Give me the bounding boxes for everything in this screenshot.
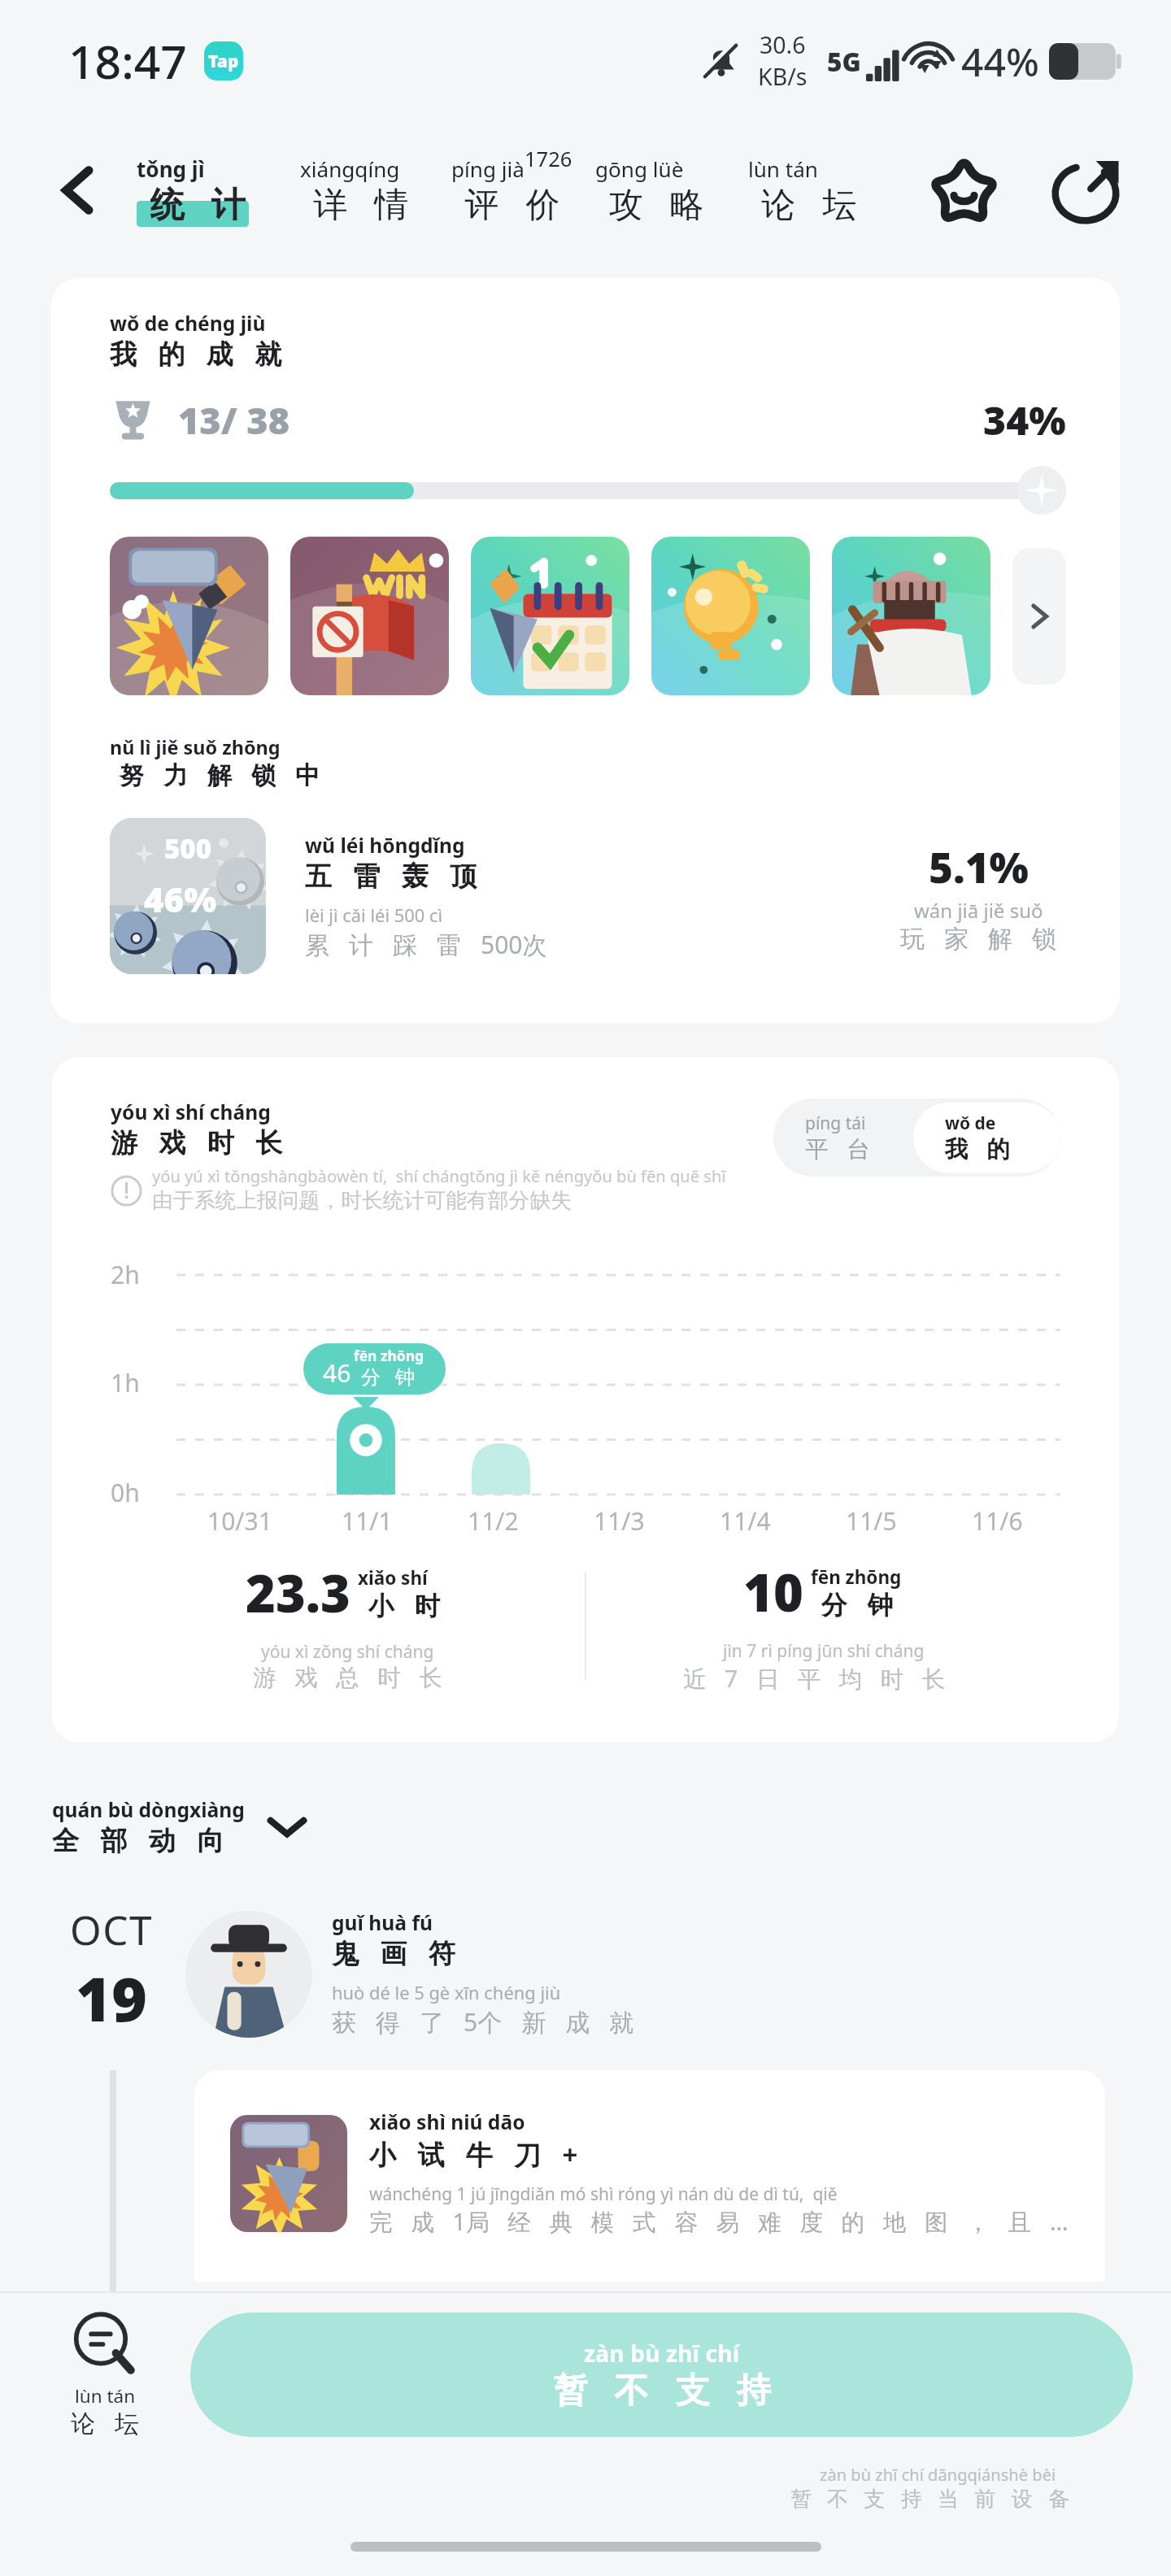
staticText: xiǎo shì niú dāo <box>369 2108 525 2136</box>
staticText: yóu yú xì tǒngshàngbàowèn tí, shí chángt… <box>152 1165 726 1187</box>
staticText: yóu xì zǒng shí cháng <box>261 1640 434 1664</box>
staticText: nǔ lì jiě suǒ zhōng <box>110 734 281 760</box>
staticText: 44% <box>961 35 1039 88</box>
staticText: zàn bù zhī chí <box>584 2338 740 2369</box>
staticText: wǒ de chéng jiù <box>110 310 266 337</box>
staticText: 累计踩雷500次 <box>305 928 567 961</box>
staticText: wán jiā jiě suǒ <box>914 897 1043 924</box>
staticText: xiángqíng <box>300 154 400 184</box>
button[interactable]: lùn tán <box>24 2310 185 2439</box>
staticText: jìn 7 rì píng jūn shí cháng <box>723 1639 925 1663</box>
staticText: huò dé le 5 gè xīn chéng jiù <box>332 1981 561 2005</box>
staticText: fēn zhōng <box>811 1564 902 1590</box>
staticText: 11/5 <box>846 1504 897 1538</box>
staticText: 论坛 <box>61 2408 149 2439</box>
staticText: 我的 <box>945 1135 1029 1164</box>
staticText: 34% <box>983 394 1066 446</box>
staticText: 小试牛刀+ <box>369 2136 578 2173</box>
staticText: 10 <box>743 1557 803 1627</box>
staticText: 由于系统上报问题，时长统计可能有部分缺失 <box>152 1187 572 1214</box>
button[interactable]: 500 <box>110 818 1066 974</box>
button[interactable]: wǒ de <box>913 1103 1060 1173</box>
button[interactable]: tǒng jì <box>137 145 259 237</box>
staticText: 暂不支持当前设备 <box>790 2486 1086 2513</box>
staticText: 13/ 38 <box>178 395 290 445</box>
staticText: 11/3 <box>594 1504 645 1538</box>
staticText: KB/s <box>758 61 808 93</box>
staticText: 攻略 <box>595 184 717 227</box>
staticText: 11/2 <box>468 1504 519 1538</box>
staticText: lùn tán <box>75 2383 136 2408</box>
staticText: píng jià <box>451 154 525 184</box>
staticText: 完成1局经典模式容易难度的地图，且… <box>369 2206 1069 2238</box>
staticText: 平台 <box>805 1135 889 1164</box>
staticText: lèi jì cǎi léi 500 cì <box>305 903 443 928</box>
staticText: 暂不支持 <box>540 2369 784 2413</box>
staticText: 评价 <box>451 184 573 227</box>
staticText: 11/1 <box>342 1504 393 1538</box>
staticText: OCT <box>70 1902 153 1956</box>
button[interactable]: Achievement badge <box>651 537 810 695</box>
staticText: Tap <box>208 50 239 73</box>
staticText: 18:47 <box>68 29 187 93</box>
staticText: 0h <box>111 1476 140 1509</box>
button[interactable]: gōng lüè <box>595 145 717 237</box>
staticText: 11/4 <box>720 1504 771 1538</box>
staticText: 2h <box>111 1258 140 1291</box>
button[interactable]: xiǎo shì niú dāo <box>194 2070 1105 2282</box>
staticText: 游戏时长 <box>111 1126 304 1160</box>
staticText: 游戏总时长 <box>244 1664 451 1693</box>
staticText: quán bù dòngxiàng <box>52 1796 245 1824</box>
staticText: gōng lüè <box>595 154 684 184</box>
staticText: zàn bù zhī chí dāngqiánshè bèi <box>820 2464 1056 2486</box>
staticText: fēn zhōng <box>354 1346 424 1365</box>
staticText: 论坛 <box>748 184 870 227</box>
button[interactable]: Achievement badge <box>832 537 990 695</box>
button[interactable]: Achievement badge <box>471 537 629 695</box>
staticText: 5G <box>827 44 861 79</box>
staticText: 小时 <box>358 1590 451 1623</box>
staticText: lùn tán <box>748 154 818 184</box>
button[interactable]: Achievement badge <box>290 537 449 695</box>
staticText: 分钟 <box>811 1590 903 1622</box>
staticText: 19 <box>76 1956 147 2039</box>
staticText: 五雷轰顶 <box>305 859 498 894</box>
staticText: 详情 <box>300 184 422 227</box>
staticText: 11/6 <box>972 1504 1023 1538</box>
staticText: wǔ léi hōngdǐng <box>305 832 465 859</box>
staticText: 我的成就 <box>110 337 303 372</box>
staticText: xiǎo shí <box>358 1565 428 1590</box>
button[interactable]: quán bù dòngxiàng <box>52 1796 311 1858</box>
staticText: 鬼画符 <box>332 1937 477 1971</box>
staticText: tǒng jì <box>137 154 205 184</box>
staticText: 5.1% <box>929 838 1029 894</box>
button[interactable]: xiángqíng <box>300 145 422 237</box>
button[interactable]: píng tái <box>805 1099 889 1177</box>
button[interactable]: lùn tán <box>748 145 870 237</box>
button[interactable]: píng jià <box>451 145 573 237</box>
staticText: 获得了5个新成就 <box>332 2005 654 2039</box>
staticText: 全部动向 <box>52 1824 246 1858</box>
staticText: 1726 <box>525 145 572 173</box>
staticText: 近7日平均时长 <box>683 1663 964 1695</box>
staticText: 玩家解锁 <box>890 924 1066 955</box>
staticText: guǐ huà fú <box>332 1909 433 1937</box>
staticText: 23.3 <box>246 1558 350 1628</box>
staticText: píng tái <box>805 1112 866 1135</box>
staticText: 分钟 <box>354 1365 422 1390</box>
button[interactable]: zàn bù zhī chí <box>190 2313 1133 2437</box>
staticText: 500 <box>164 830 212 867</box>
button[interactable]: Back <box>20 132 137 249</box>
staticText: 统计 <box>137 184 259 227</box>
staticText: yóu xì shí cháng <box>111 1099 271 1126</box>
button[interactable]: Share <box>1030 134 1142 246</box>
button[interactable]: Achievement badge <box>110 537 268 695</box>
button[interactable]: Favorite <box>908 134 1020 246</box>
staticText: 努力解锁中 <box>110 760 329 791</box>
button[interactable]: More achievements <box>1012 548 1066 685</box>
staticText: 1h <box>111 1366 140 1399</box>
staticText: wǒ de <box>945 1112 996 1135</box>
staticText: 46% <box>144 876 217 922</box>
staticText: 46 <box>323 1356 351 1390</box>
staticText: 30.6 <box>760 29 806 61</box>
